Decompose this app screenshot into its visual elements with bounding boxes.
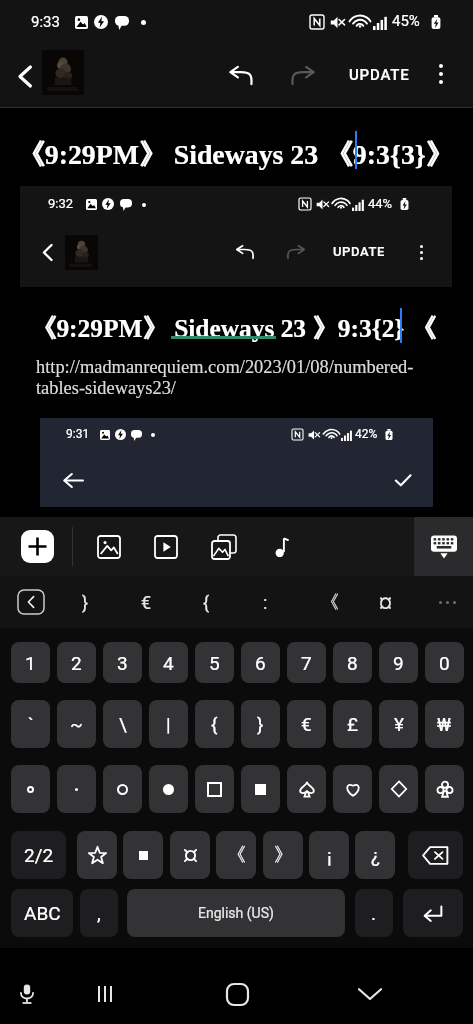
button[interactable]: Symbol key [425,765,464,813]
button[interactable]: 2/2 [11,831,66,879]
button[interactable]: £ [333,700,372,748]
button[interactable]: Recent apps [80,969,130,1019]
staticText: UPDATE [349,66,410,84]
button[interactable]: Show keyboard [414,517,473,576]
button[interactable]: More symbols [424,579,470,625]
button[interactable]: 》 [263,831,303,879]
button[interactable]: 0 [425,642,464,683]
button[interactable]: 9 [379,642,418,683]
staticText: { [203,592,210,613]
button[interactable]: 《 [306,579,354,625]
button[interactable]: Symbol key [195,765,234,813]
button[interactable]: Currency symbol [170,831,210,879]
button[interactable]: } [241,700,280,748]
button[interactable]: , [80,889,118,937]
button[interactable]: | [149,700,188,748]
staticText: 9:33 [31,13,60,31]
staticText: 《 [321,591,339,614]
staticText: : [263,592,268,613]
button[interactable]: UPDATE [341,58,418,92]
button[interactable]: English (US) [127,889,345,937]
button[interactable]: { [182,579,230,625]
button[interactable]: 9:31 [40,418,433,507]
button[interactable]: Insert video [144,534,188,560]
button[interactable]: ¤ [361,579,409,625]
button[interactable]: Back [5,56,45,96]
staticText: } [82,592,89,613]
staticText: http://madmanrequiem.com/2023/01/08/numb… [36,357,420,398]
button[interactable]: Enter [403,889,463,937]
staticText: ¤ [379,592,392,613]
button[interactable]: Symbol key [241,765,280,813]
staticText: 4 [163,652,174,674]
button[interactable]: Symbol key [11,765,50,813]
button[interactable]: Small square symbol [123,831,163,879]
staticText: 45% [392,12,420,30]
button[interactable]: 《 [216,831,256,879]
button[interactable]: Star symbol [77,831,117,879]
staticText: 9 [393,652,404,674]
button[interactable]: 3 [103,642,142,683]
staticText: | [166,713,171,735]
button[interactable]: ABC [11,889,73,937]
button[interactable]: € [287,700,326,748]
button[interactable]: Symbol key [103,765,142,813]
button[interactable]: \ [103,700,142,748]
button[interactable]: 2 [57,642,96,683]
button[interactable]: } [61,579,109,625]
staticText: 9:32 [48,196,74,211]
button[interactable]: Symbol key [287,765,326,813]
button[interactable]: Symbol key [57,765,96,813]
button[interactable]: : [241,579,289,625]
button[interactable]: 5 [195,642,234,683]
staticText: \ [119,713,127,735]
button[interactable]: . [355,889,393,937]
button[interactable]: € [122,579,170,625]
button[interactable]: 4 [149,642,188,683]
button[interactable]: ` [11,700,50,748]
button[interactable]: Insert image [87,534,131,560]
button[interactable]: Post image [42,50,84,95]
button[interactable]: Previous [18,590,44,614]
staticText: 2 [71,652,82,674]
button[interactable]: ¥ [379,700,418,748]
button[interactable]: 8 [333,642,372,683]
button[interactable]: Voice input [2,969,52,1019]
button[interactable]: Add attachment [21,530,54,563]
button[interactable]: 1 [11,642,50,683]
button[interactable]: Symbol key [333,765,372,813]
button[interactable]: ₩ [425,700,464,748]
button[interactable]: Home [212,969,262,1019]
button[interactable]: Symbol key [379,765,418,813]
staticText: 8 [347,652,358,674]
button[interactable]: Insert audio [259,534,303,560]
staticText: 《9:29PM》 Sideways 23 》9:3{2} 《 [31,313,437,345]
staticText: 1 [25,652,36,674]
button[interactable]: 6 [241,642,280,683]
staticText: ¡ [327,844,332,866]
staticText: 0 [439,652,450,674]
button[interactable]: 7 [287,642,326,683]
staticText: { [211,713,218,735]
button[interactable]: Undo [221,55,261,95]
button[interactable]: Insert gallery [201,534,247,560]
button[interactable]: Redo [283,55,323,95]
button[interactable]: ¿ [355,831,395,879]
staticText: 《 [227,843,246,867]
staticText: English (US) [198,905,274,921]
button[interactable]: Backspace [408,831,463,879]
button[interactable]: Symbol key [149,765,188,813]
staticText: ~ [70,713,83,735]
button[interactable]: ¡ [309,831,349,879]
staticText: 7 [301,652,312,674]
button[interactable]: More options [423,56,459,92]
staticText: ¿ [371,844,380,866]
button[interactable]: ~ [57,700,96,748]
button[interactable]: 9:32 [20,186,452,287]
button[interactable]: Hide keyboard [345,969,395,1019]
staticText: 44% [368,196,393,211]
staticText: ¥ [394,713,404,735]
button[interactable]: { [195,700,234,748]
staticText: € [141,592,152,613]
staticText: £ [347,713,359,735]
